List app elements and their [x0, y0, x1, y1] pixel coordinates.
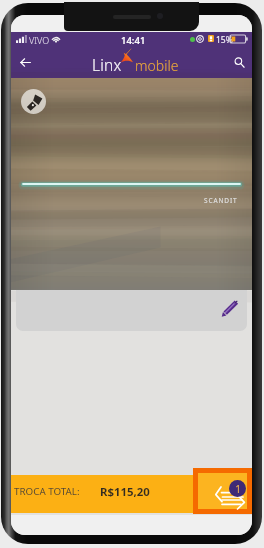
button[interactable]: Edit [217, 295, 243, 321]
button[interactable]: Toggle flashlight [21, 89, 46, 114]
staticText: 14:41 [121, 34, 146, 47]
staticText: VIVO [29, 34, 50, 46]
staticText: 15% [216, 34, 233, 46]
staticText: Linx [92, 54, 122, 75]
staticText: R$115,20 [100, 484, 150, 500]
button[interactable]: Back [14, 51, 36, 73]
button[interactable]: Search [228, 51, 250, 73]
staticText: SCANDIT [204, 196, 238, 205]
button[interactable]: Exchange items [198, 473, 247, 509]
staticText: mobile [135, 56, 179, 75]
staticText: TROCA TOTAL: [14, 485, 80, 498]
staticText: 1 [235, 482, 241, 496]
